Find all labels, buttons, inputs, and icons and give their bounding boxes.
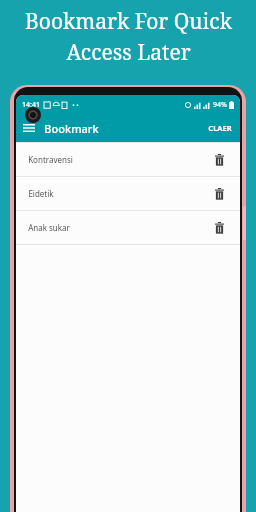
staticText: Access Later [66, 38, 191, 67]
staticText: Anak sukar [28, 222, 70, 233]
button[interactable]: Delete Anak sukar [210, 219, 228, 237]
button[interactable]: Kontravensi [16, 143, 240, 176]
button[interactable]: Eidetik [16, 177, 240, 210]
button[interactable]: Delete Kontravensi [210, 151, 228, 169]
button[interactable]: Delete Eidetik [210, 185, 228, 203]
button[interactable]: CLAER [200, 117, 240, 139]
button[interactable]: Open navigation menu [16, 115, 42, 141]
staticText: 14:41 [22, 100, 40, 110]
staticText: CLAER [208, 123, 232, 133]
staticText: Bookmark For Quick [25, 7, 232, 36]
button[interactable]: Anak sukar [16, 211, 240, 244]
staticText: Eidetik [28, 188, 54, 199]
staticText: Bookmark [44, 121, 99, 136]
staticText: 94% [213, 100, 227, 110]
staticText: Kontravensi [28, 154, 73, 165]
